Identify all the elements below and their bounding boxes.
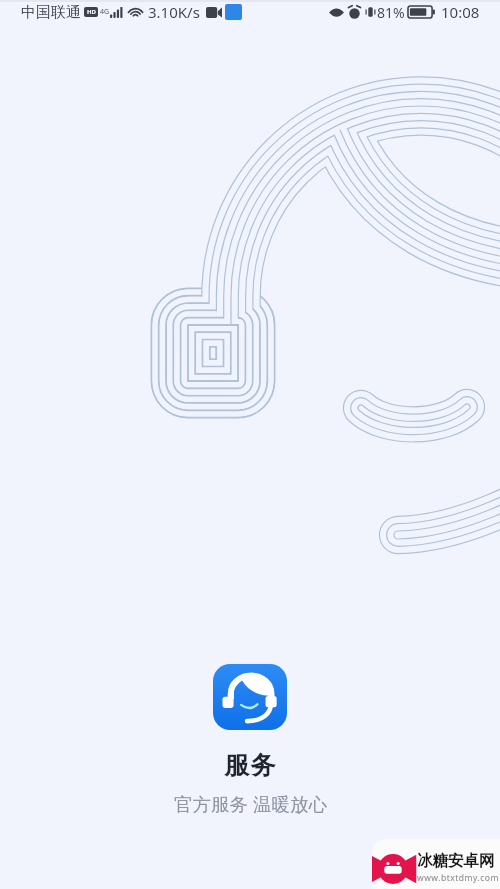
staticText: 81%	[377, 3, 405, 22]
staticText: 中国联通	[21, 3, 81, 22]
button[interactable]: 服务	[213, 664, 287, 730]
staticText: www.btxtdmy.com	[417, 872, 499, 884]
staticText: 10:08	[441, 2, 480, 22]
staticText: 3.10K/s	[148, 2, 200, 22]
staticText: 4G	[100, 7, 110, 17]
staticText: HD	[87, 8, 96, 16]
staticText: 冰糖安卓网	[417, 851, 495, 871]
staticText: 官方服务 温暖放心	[174, 791, 327, 816]
staticText: 服务	[224, 750, 276, 781]
